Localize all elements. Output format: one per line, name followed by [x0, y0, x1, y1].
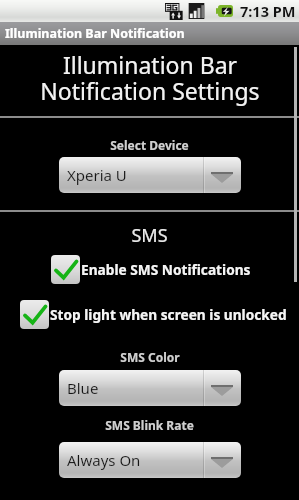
staticText: Select Device: [110, 137, 189, 153]
button[interactable]: Blue: [59, 370, 241, 406]
staticText: Always On: [67, 450, 141, 470]
button[interactable]: Always On: [59, 442, 241, 478]
staticText: SMS Color: [120, 349, 180, 365]
other: 3G data connection: [165, 3, 183, 20]
other: Signal strength: [188, 3, 205, 19]
staticText: Stop light when screen is unlocked: [50, 305, 287, 324]
staticText: SMS: [131, 223, 168, 248]
other: Battery charging: [216, 4, 233, 18]
button[interactable]: Xperia U: [59, 157, 241, 193]
staticText: SMS Blink Rate: [105, 417, 194, 433]
staticText: 7:13 PM: [240, 1, 296, 21]
staticText: Enable SMS Notifications: [81, 260, 251, 279]
button[interactable]: Stop light when screen is unlocked: [20, 300, 287, 329]
button[interactable]: Enable SMS Notifications: [51, 255, 251, 284]
staticText: Illumination Bar Notification Settings: [40, 49, 260, 107]
staticText: Xperia U: [67, 165, 127, 185]
staticText: Blue: [67, 378, 99, 398]
staticText: Illumination Bar Notification: [5, 25, 185, 42]
